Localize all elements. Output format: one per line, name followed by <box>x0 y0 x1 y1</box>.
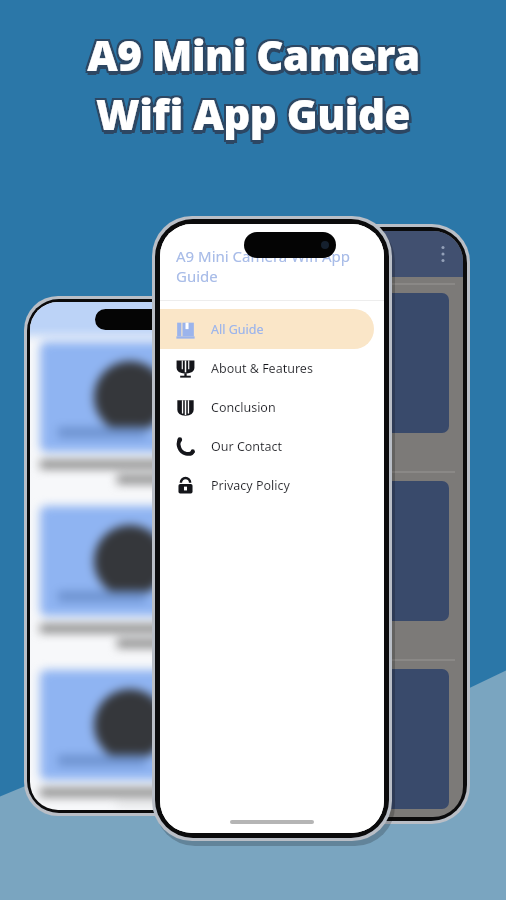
staticText: A9 Mini Camera Wifi App <box>176 246 350 266</box>
staticText: Our Contact <box>211 438 283 455</box>
staticText: A9 Mini Camera <box>85 24 418 81</box>
staticText: Wifi App Guide <box>96 87 410 144</box>
staticText: A9 Mini Camera <box>89 28 422 85</box>
staticText: About & Features <box>211 360 313 377</box>
staticText: Wifi App Guide <box>98 85 412 142</box>
staticText: A9 Mini Camera <box>89 26 422 83</box>
staticText: Privacy Policy <box>211 477 290 494</box>
staticText: Conclusion <box>211 399 276 416</box>
staticText: A9 Mini Camera <box>87 30 420 87</box>
staticText: Guide <box>176 266 218 286</box>
staticText: A9 Mini Camera <box>87 28 420 85</box>
staticText: A9 Mini Camera <box>85 26 418 83</box>
staticText: Wifi App Guide <box>94 83 408 140</box>
button[interactable]: Conclusion <box>160 388 384 427</box>
staticText: A9 Mini Camera <box>89 24 422 81</box>
staticText: A9 Mini Camera <box>90 29 423 86</box>
staticText: A9 Mini Camera <box>87 26 420 83</box>
staticText: Wifi App Guide <box>94 87 408 144</box>
button[interactable]: Privacy Policy <box>160 466 384 505</box>
button[interactable]: About & Features <box>160 349 384 388</box>
staticText: Wifi App Guide <box>96 89 410 146</box>
staticText: Wifi App Guide <box>94 85 408 142</box>
staticText: Wifi App Guide <box>96 83 410 140</box>
staticText: Wifi App Guide <box>99 88 413 145</box>
staticText: Wifi App Guide <box>96 85 410 142</box>
staticText: A9 Mini Camera <box>85 28 418 85</box>
staticText: Wifi App Guide <box>98 83 412 140</box>
button[interactable]: Our Contact <box>160 427 384 466</box>
staticText: All Guide <box>211 321 264 338</box>
staticText: A9 Mini Camera <box>87 24 420 81</box>
button[interactable]: All Guide <box>160 309 374 349</box>
staticText: Wifi App Guide <box>98 87 412 144</box>
